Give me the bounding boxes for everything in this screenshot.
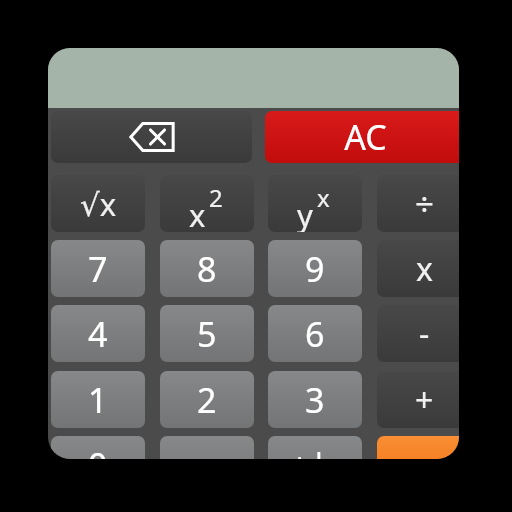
- staticText: 8: [197, 246, 217, 292]
- button[interactable]: 4: [51, 305, 145, 362]
- button[interactable]: -: [377, 305, 459, 362]
- staticText: x: [189, 194, 206, 232]
- button[interactable]: AC: [265, 111, 459, 163]
- staticText: 3: [305, 377, 325, 423]
- button[interactable]: 9: [268, 240, 362, 297]
- button[interactable]: 5: [160, 305, 254, 362]
- staticText: AC: [344, 114, 387, 160]
- staticText: x: [317, 181, 330, 214]
- button[interactable]: +|-: [268, 436, 362, 459]
- staticText: -: [419, 312, 430, 356]
- staticText: 4: [88, 311, 108, 357]
- staticText: 2: [197, 377, 217, 423]
- button[interactable]: 3: [268, 371, 362, 428]
- staticText: √x: [80, 183, 117, 225]
- staticText: x: [416, 247, 433, 291]
- button[interactable]: +: [377, 371, 459, 428]
- staticText: 6: [305, 311, 325, 357]
- staticText: 5: [197, 311, 217, 357]
- staticText: 0: [88, 442, 108, 459]
- button[interactable]: =: [377, 436, 459, 459]
- staticText: +: [415, 378, 434, 422]
- button[interactable]: .: [160, 436, 254, 459]
- staticText: 9: [305, 246, 325, 292]
- button[interactable]: 7: [51, 240, 145, 297]
- button[interactable]: √x: [51, 175, 145, 232]
- button[interactable]: 1: [51, 371, 145, 428]
- button[interactable]: Backspace: [51, 111, 252, 163]
- button[interactable]: x: [160, 175, 254, 232]
- staticText: 7: [88, 246, 108, 292]
- button[interactable]: ÷: [377, 175, 459, 232]
- staticText: +|-: [290, 442, 340, 459]
- button[interactable]: y: [268, 175, 362, 232]
- button[interactable]: 6: [268, 305, 362, 362]
- button[interactable]: 8: [160, 240, 254, 297]
- button[interactable]: 2: [160, 371, 254, 428]
- staticText: y: [297, 194, 313, 232]
- staticText: 1: [88, 377, 108, 423]
- staticText: ÷: [415, 181, 434, 226]
- staticText: 2: [209, 181, 223, 214]
- staticText: =: [415, 443, 434, 459]
- button[interactable]: x: [377, 240, 459, 297]
- button[interactable]: 0: [51, 436, 145, 459]
